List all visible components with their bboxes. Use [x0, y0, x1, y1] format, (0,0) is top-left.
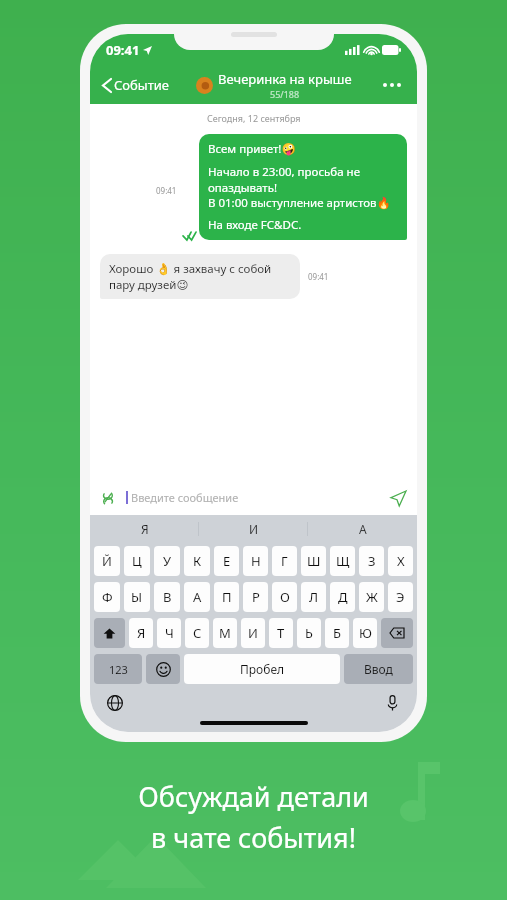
staticText: Х	[397, 552, 405, 570]
button[interactable]: Backspace	[381, 618, 413, 648]
staticText: З	[368, 552, 376, 570]
staticText: Ю	[359, 624, 372, 642]
button[interactable]: Ш	[301, 546, 326, 576]
staticText: Ввод	[364, 661, 393, 677]
staticText: Начало в 23:00, просьба не опаздывать! В…	[208, 164, 398, 210]
staticText: Щ	[336, 552, 350, 570]
button[interactable]: Хорошо 👌 я захвачу с собой пару друзей😉	[100, 254, 300, 299]
button[interactable]: Х	[388, 546, 413, 576]
staticText: Е	[223, 552, 231, 570]
button[interactable]: Ц	[124, 546, 150, 576]
button[interactable]: Б	[325, 618, 349, 648]
button[interactable]: 123	[94, 654, 142, 684]
button[interactable]: Л	[301, 582, 326, 612]
staticText: Ч	[165, 624, 174, 642]
staticText: в чате события!	[151, 819, 356, 856]
button[interactable]: Change language	[104, 692, 126, 714]
staticText: Д	[338, 588, 348, 606]
staticText: Ь	[305, 624, 313, 642]
staticText: 09:41	[106, 41, 140, 59]
button[interactable]: More options	[377, 77, 407, 93]
button[interactable]: Ы	[124, 582, 150, 612]
button[interactable]: Пробел	[184, 654, 340, 684]
staticText: М	[219, 624, 231, 642]
button[interactable]: Событие	[100, 72, 171, 98]
button[interactable]: У	[154, 546, 180, 576]
button[interactable]: Ф	[94, 582, 120, 612]
staticText: В	[163, 588, 172, 606]
staticText: Сегодня, 12 сентября	[207, 112, 301, 124]
staticText: Я	[137, 624, 146, 642]
button[interactable]: Send	[387, 487, 409, 509]
button[interactable]: И	[241, 618, 265, 648]
button[interactable]: С	[185, 618, 209, 648]
staticText: Ц	[132, 552, 142, 570]
button[interactable]: В	[154, 582, 180, 612]
button[interactable]: Р	[243, 582, 268, 612]
staticText: Ж	[366, 588, 378, 606]
button[interactable]: Ч	[157, 618, 181, 648]
staticText: Хорошо 👌 я захвачу с собой пару друзей😉	[109, 261, 291, 292]
staticText: Событие	[114, 76, 169, 94]
button[interactable]: З	[359, 546, 384, 576]
button[interactable]: Н	[243, 546, 268, 576]
button[interactable]: Emoji	[146, 654, 180, 684]
staticText: Обсуждай детали	[138, 778, 369, 815]
staticText: Всем привет!🤪	[208, 141, 296, 157]
staticText: Введите сообщение	[131, 490, 239, 505]
button[interactable]: Е	[214, 546, 239, 576]
button[interactable]: Shift	[94, 618, 125, 648]
button[interactable]: Ж	[359, 582, 384, 612]
staticText: Р	[252, 588, 260, 606]
staticText: К	[193, 552, 202, 570]
staticText: Г	[281, 552, 288, 570]
button[interactable]: Ю	[353, 618, 377, 648]
button[interactable]: Г	[272, 546, 297, 576]
staticText: Я	[141, 521, 149, 537]
staticText: Л	[309, 588, 319, 606]
staticText: Пробел	[240, 661, 285, 677]
button[interactable]: Й	[94, 546, 120, 576]
button[interactable]: Я	[129, 618, 153, 648]
button[interactable]: Щ	[330, 546, 355, 576]
staticText: Э	[396, 588, 405, 606]
staticText: 55/188	[270, 88, 300, 100]
staticText: 09:41	[156, 185, 177, 196]
staticText: О	[280, 588, 290, 606]
staticText: А	[193, 588, 202, 606]
staticText: Ы	[131, 588, 143, 606]
staticText: У	[163, 552, 172, 570]
staticText: А	[359, 521, 367, 537]
button[interactable]: Ввод	[344, 654, 413, 684]
button[interactable]: Д	[330, 582, 355, 612]
button[interactable]: Attach	[98, 488, 118, 508]
staticText: Ш	[307, 552, 321, 570]
button[interactable]: Ь	[297, 618, 321, 648]
button[interactable]: Всем привет!🤪	[199, 134, 407, 240]
staticText: И	[249, 521, 259, 537]
staticText: 09:41	[308, 271, 329, 282]
button[interactable]: О	[272, 582, 297, 612]
staticText: Т	[277, 624, 285, 642]
button[interactable]: Э	[388, 582, 413, 612]
staticText: И	[248, 624, 258, 642]
button[interactable]: Я	[90, 515, 199, 543]
staticText: Н	[251, 552, 261, 570]
staticText: На входе FC&DC.	[208, 217, 302, 233]
staticText: Вечеринка на крыше	[218, 70, 352, 88]
button[interactable]: К	[184, 546, 210, 576]
button[interactable]: М	[213, 618, 237, 648]
staticText: П	[222, 588, 232, 606]
button[interactable]: А	[308, 515, 417, 543]
button[interactable]: Voice input	[381, 692, 403, 714]
button[interactable]: Т	[269, 618, 293, 648]
staticText: С	[193, 624, 202, 642]
button[interactable]: Введите сообщение	[122, 487, 387, 508]
staticText: Й	[102, 552, 112, 570]
staticText: Б	[333, 624, 341, 642]
staticText: Ф	[102, 588, 113, 606]
staticText: 123	[109, 662, 128, 677]
button[interactable]: П	[214, 582, 239, 612]
button[interactable]: И	[199, 515, 308, 543]
button[interactable]: А	[184, 582, 210, 612]
